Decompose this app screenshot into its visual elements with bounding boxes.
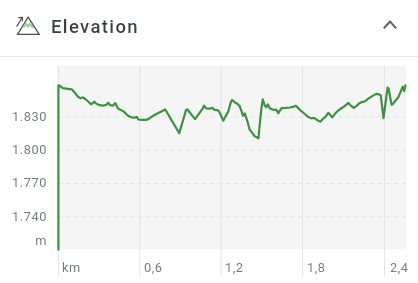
- staticText: km: [62, 260, 81, 275]
- staticText: m: [35, 233, 47, 248]
- button[interactable]: Elevation: [0, 0, 418, 50]
- staticText: 0,6: [144, 260, 163, 275]
- staticText: 1,2: [225, 260, 244, 275]
- staticText: Elevation: [51, 16, 139, 38]
- staticText: 1.770: [12, 175, 47, 190]
- button[interactable]: Collapse section: [370, 5, 410, 45]
- staticText: 2,4: [390, 260, 409, 275]
- staticText: 1.830: [12, 109, 47, 124]
- staticText: 1.800: [12, 142, 47, 157]
- staticText: 1.740: [12, 209, 47, 224]
- staticText: 1,8: [307, 260, 326, 275]
